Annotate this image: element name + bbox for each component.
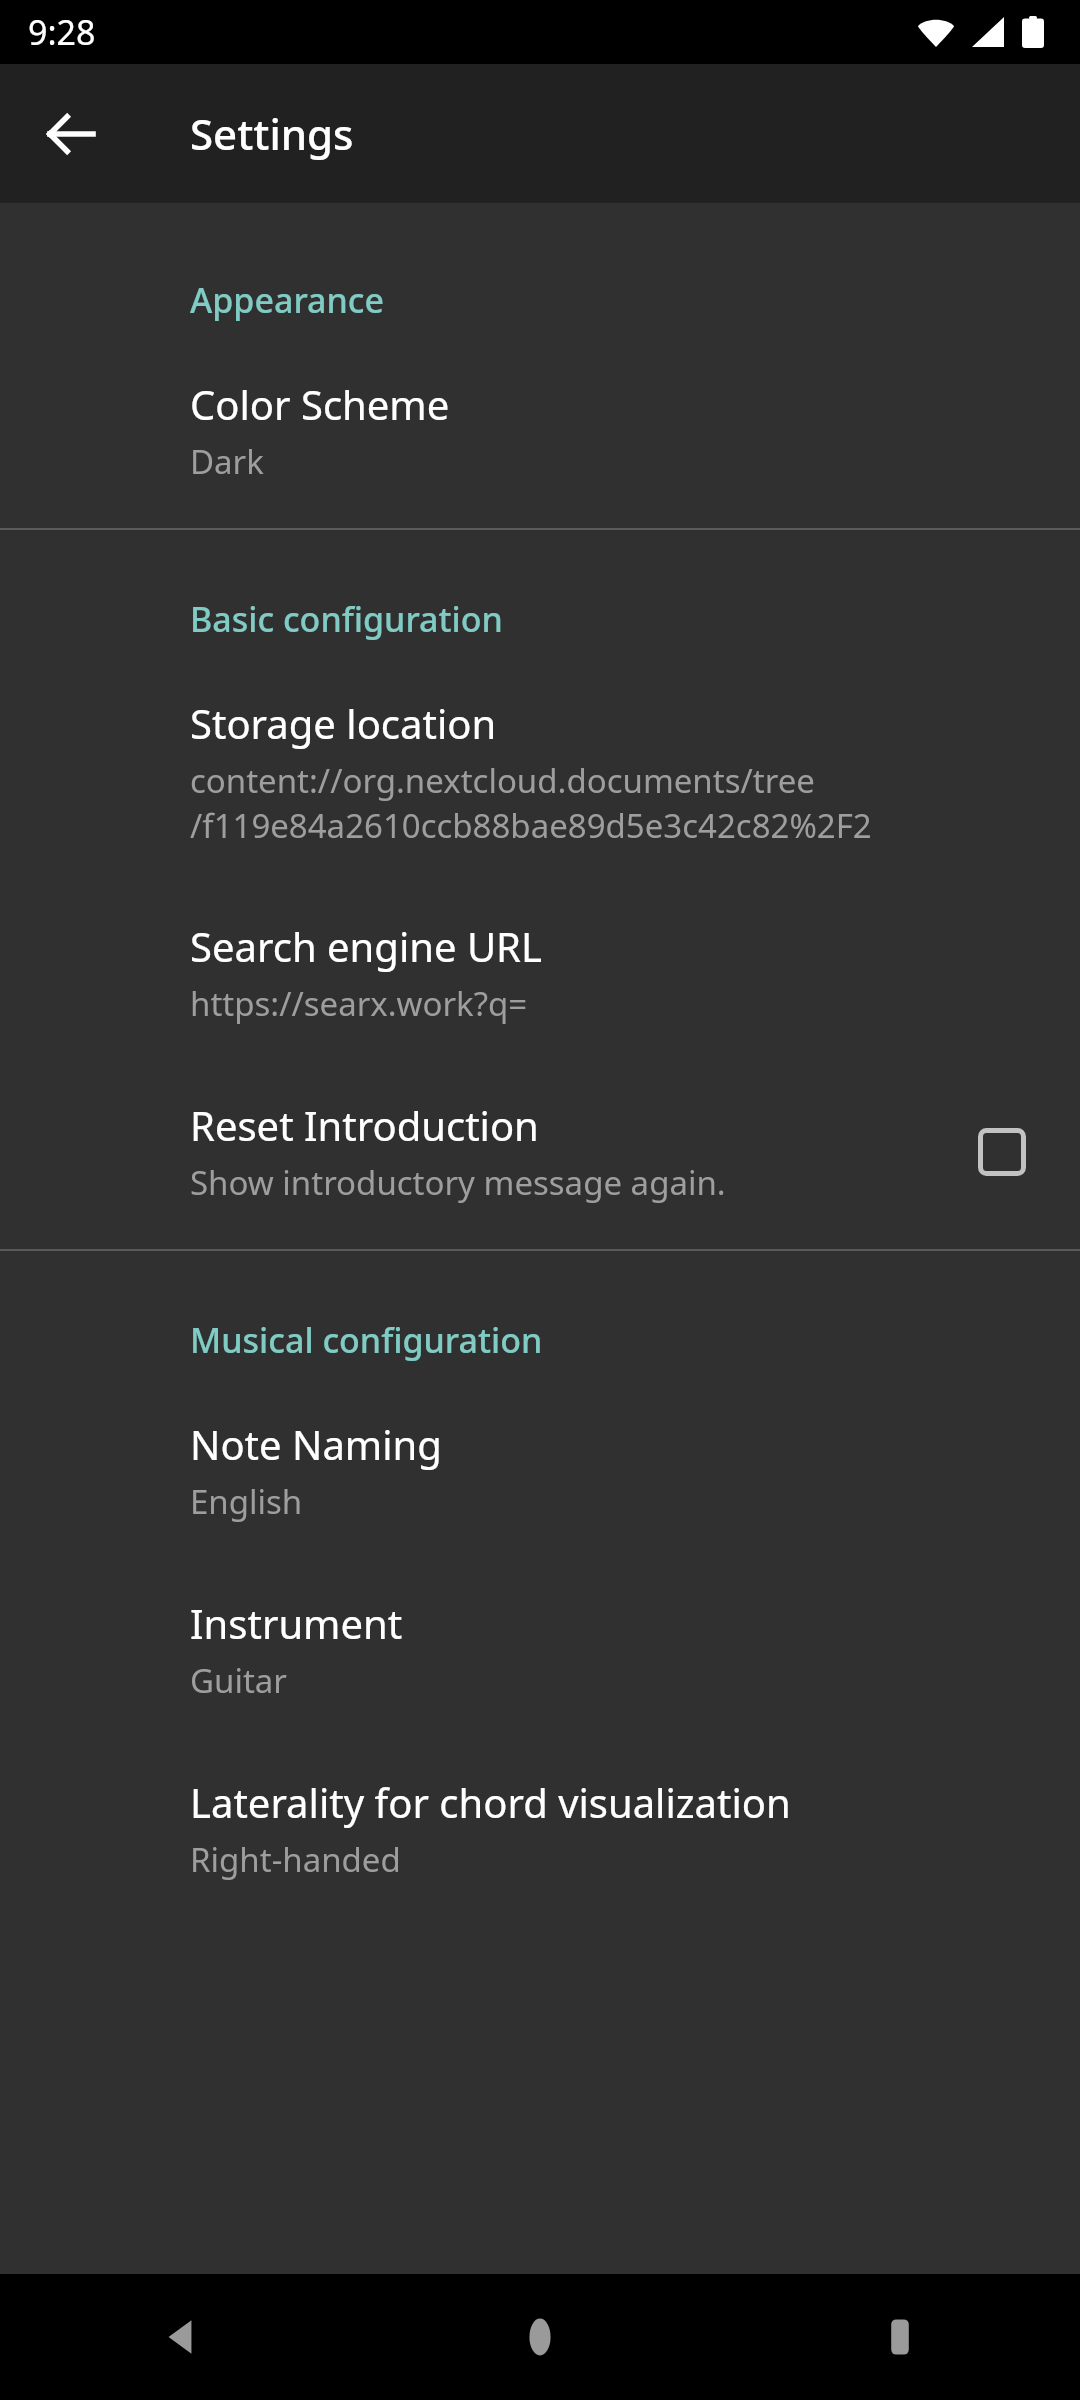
staticText: Storage location [190,696,497,750]
button[interactable]: Instrument [0,1524,1080,1703]
staticText: 9:28 [28,9,96,55]
staticText: Show introductory message again. [190,1160,726,1205]
button[interactable]: Reset Introduction [0,1026,1080,1249]
button[interactable]: Recent apps [720,2274,1080,2400]
button[interactable]: Search engine URL [0,847,1080,1026]
staticText: Laterality for chord visualization [190,1775,791,1829]
staticText: Basic configuration [190,596,1032,642]
staticText: Note Naming [190,1417,442,1471]
staticText: content://org.nextcloud.documents/tree /… [190,758,872,847]
staticText: English [190,1479,303,1524]
button[interactable]: Storage location [0,642,1080,847]
staticText: Instrument [190,1596,403,1650]
staticText: Search engine URL [190,919,542,973]
button[interactable]: Home [360,2274,720,2400]
button[interactable]: Note Naming [0,1363,1080,1524]
button[interactable]: Laterality for chord visualization [0,1703,1080,1882]
staticText: Guitar [190,1658,287,1703]
button[interactable]: Color Scheme [0,323,1080,528]
staticText: Settings [190,105,354,162]
staticText: Appearance [190,277,1032,323]
button[interactable]: Navigate up [24,87,118,181]
button[interactable]: Reset Introduction checkbox [960,1110,1044,1194]
staticText: Musical configuration [190,1317,1032,1363]
staticText: Dark [190,439,264,484]
staticText: Reset Introduction [190,1098,539,1152]
staticText: Right-handed [190,1837,401,1882]
staticText: https://searx.work?q= [190,981,528,1026]
staticText: Color Scheme [190,377,450,431]
button[interactable]: Back [0,2274,360,2400]
